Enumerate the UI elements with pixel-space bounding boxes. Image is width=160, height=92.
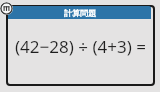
button[interactable]: 計算問題 xyxy=(8,6,151,19)
button[interactable]: App icon xyxy=(0,2,13,15)
staticText: (42−28) ÷ (4+3) = xyxy=(15,35,146,58)
staticText: 計算問題 xyxy=(64,8,96,18)
